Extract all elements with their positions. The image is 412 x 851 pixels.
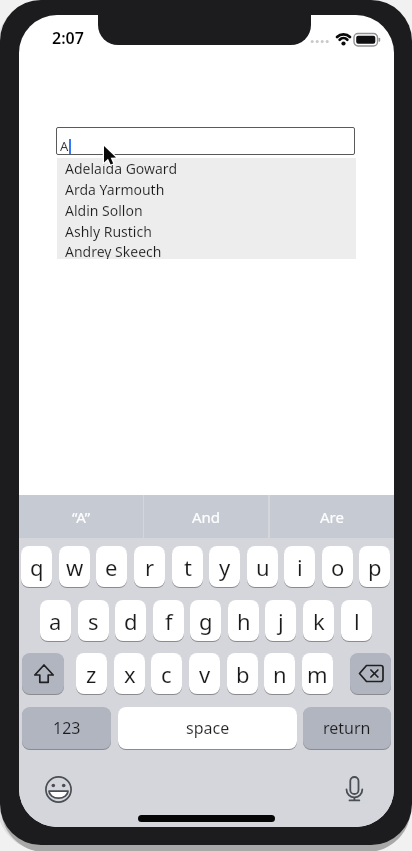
staticText: m (307, 659, 328, 689)
staticText: Adelaida Goward (65, 159, 177, 178)
staticText: v (199, 659, 211, 689)
button[interactable]: i (284, 546, 315, 587)
staticText: f (165, 606, 173, 636)
button[interactable]: j (265, 600, 296, 641)
button[interactable]: space (118, 707, 297, 749)
button[interactable]: l (341, 600, 372, 641)
staticText: p (368, 552, 382, 582)
button[interactable] (22, 653, 64, 694)
button[interactable]: y (209, 546, 240, 587)
button[interactable]: Arda Yarmouth (57, 179, 356, 200)
button[interactable] (350, 653, 391, 694)
staticText: q (30, 552, 44, 582)
button[interactable]: h (228, 600, 259, 641)
button[interactable]: t (172, 546, 203, 587)
button[interactable]: s (78, 600, 109, 641)
button[interactable]: n (264, 653, 295, 694)
button[interactable]: And (144, 495, 268, 538)
button[interactable]: b (227, 653, 258, 694)
button[interactable]: p (359, 546, 390, 587)
staticText: n (273, 659, 287, 689)
staticText: Ashly Rustich (65, 222, 152, 241)
staticText: a (49, 606, 62, 636)
button[interactable]: “A” (19, 495, 143, 538)
button[interactable]: Ashly Rustich (57, 221, 356, 242)
staticText: z (86, 659, 97, 689)
button[interactable]: u (247, 546, 278, 587)
staticText: b (236, 659, 250, 689)
button[interactable]: k (303, 600, 334, 641)
staticText: i (297, 552, 303, 582)
staticText: Arda Yarmouth (65, 180, 165, 199)
button[interactable]: Andrey Skeech (57, 242, 356, 259)
staticText: Andrey Skeech (65, 242, 162, 259)
staticText: o (331, 552, 345, 582)
staticText: And (192, 507, 221, 527)
staticText: return (323, 717, 371, 739)
staticText: y (219, 552, 231, 582)
button[interactable]: return (303, 707, 391, 749)
staticText: 2:07 (52, 27, 84, 49)
button[interactable]: a (40, 600, 71, 641)
button[interactable]: r (134, 546, 165, 587)
staticText: r (145, 552, 155, 582)
button[interactable]: w (59, 546, 90, 587)
button[interactable]: o (322, 546, 353, 587)
button[interactable]: x (114, 653, 145, 694)
button[interactable]: 123 (22, 707, 111, 749)
button[interactable]: z (76, 653, 107, 694)
staticText: s (88, 606, 99, 636)
staticText: t (184, 552, 192, 582)
button[interactable]: Are (270, 495, 394, 538)
staticText: g (199, 606, 213, 636)
button[interactable]: Adelaida Goward (57, 158, 356, 179)
button[interactable]: c (151, 653, 182, 694)
staticText: A (60, 137, 69, 155)
staticText: d (124, 606, 138, 636)
staticText: u (256, 552, 270, 582)
staticText: Aldin Sollon (65, 201, 143, 220)
staticText: l (354, 606, 360, 636)
button[interactable]: g (190, 600, 221, 641)
staticText: w (66, 552, 84, 582)
staticText: “A” (72, 507, 91, 527)
staticText: e (105, 552, 118, 582)
button[interactable]: m (302, 653, 333, 694)
staticText: space (186, 717, 230, 739)
staticText: 123 (53, 717, 81, 739)
button[interactable]: e (96, 546, 127, 587)
button[interactable]: A (56, 127, 355, 155)
button[interactable]: v (189, 653, 220, 694)
staticText: c (161, 659, 172, 689)
button[interactable]: d (115, 600, 146, 641)
staticText: x (124, 659, 136, 689)
button[interactable]: q (21, 546, 52, 587)
staticText: j (278, 606, 284, 636)
staticText: k (313, 606, 325, 636)
staticText: Are (320, 507, 344, 527)
button[interactable]: f (153, 600, 184, 641)
staticText: h (237, 606, 251, 636)
button[interactable]: Aldin Sollon (57, 200, 356, 221)
